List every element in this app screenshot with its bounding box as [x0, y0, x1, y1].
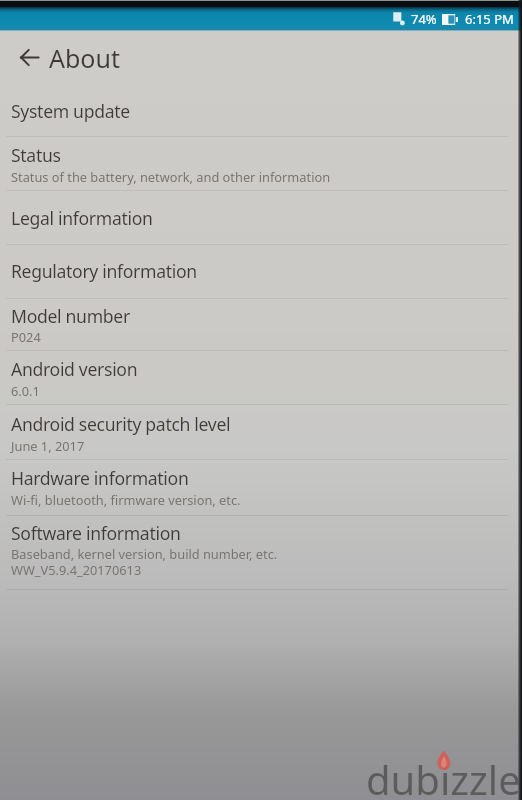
staticText: Status: [11, 143, 61, 167]
staticText: Android security patch level: [11, 412, 231, 436]
button[interactable]: System update: [0, 83, 522, 137]
button[interactable]: Back: [18, 46, 40, 68]
staticText: Wi-fi, bluetooth, firmware version, etc.: [11, 491, 241, 508]
staticText: Regulatory information: [11, 259, 197, 283]
staticText: Status of the battery, network, and othe…: [11, 168, 331, 185]
staticText: Hardware information: [11, 466, 189, 490]
button[interactable]: Legal information: [0, 191, 522, 245]
button[interactable]: Hardware information: [0, 460, 522, 516]
button[interactable]: Model number: [0, 299, 522, 351]
staticText: Legal information: [11, 206, 153, 230]
staticText: 6:15 PM: [465, 10, 514, 28]
staticText: System update: [11, 99, 130, 123]
staticText: Android version: [11, 357, 138, 381]
staticText: Baseband, kernel version, build number, …: [11, 545, 278, 562]
staticText: 74%: [411, 10, 437, 28]
button[interactable]: Software information: [0, 516, 522, 590]
button[interactable]: Android version: [0, 351, 522, 405]
staticText: Model number: [11, 304, 130, 328]
staticText: WW_V5.9.4_20170613: [11, 561, 142, 578]
staticText: June 1, 2017: [11, 437, 85, 454]
staticText: About: [49, 41, 120, 75]
button[interactable]: Regulatory information: [0, 245, 522, 299]
button[interactable]: Status: [0, 137, 522, 191]
staticText: P024: [11, 328, 41, 345]
staticText: 6.0.1: [11, 382, 40, 399]
button[interactable]: Android security patch level: [0, 405, 522, 460]
staticText: dubizzle: [366, 752, 521, 800]
staticText: Software information: [11, 521, 181, 545]
